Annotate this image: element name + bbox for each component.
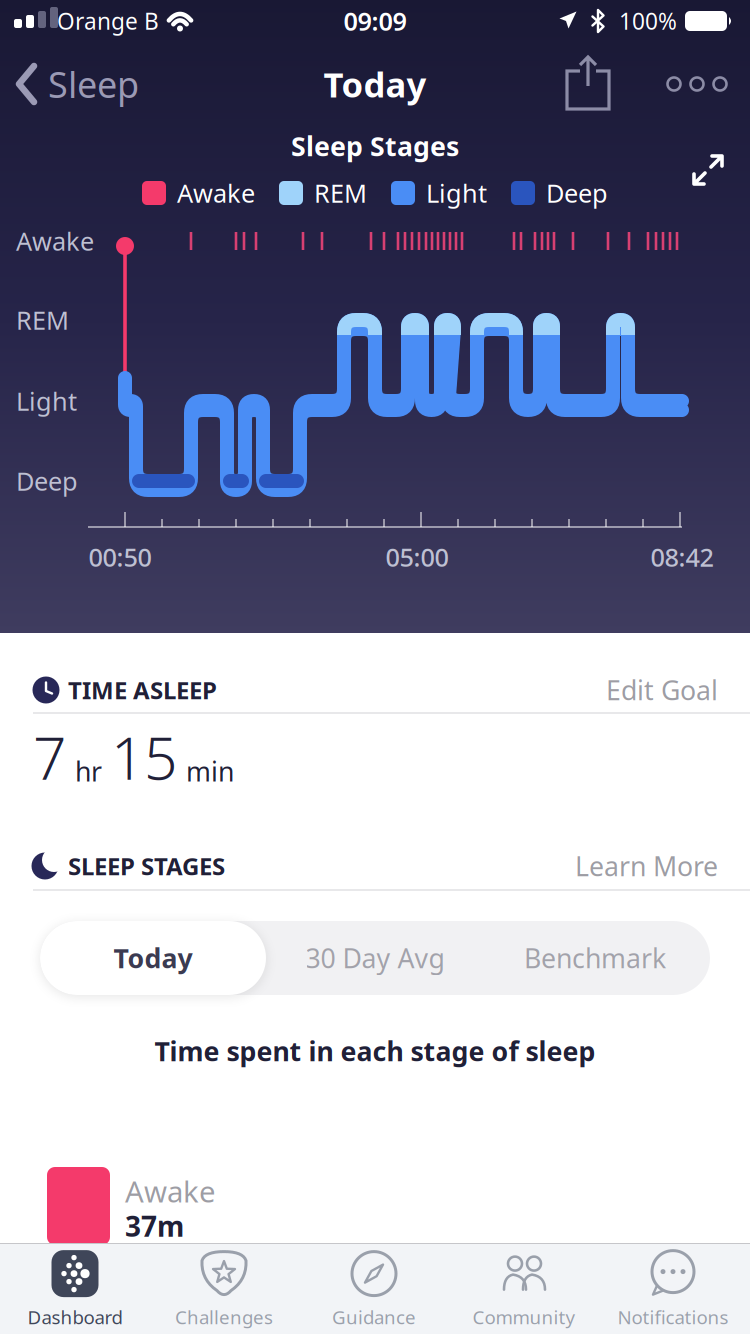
button[interactable]: Guidance xyxy=(332,1249,416,1329)
button[interactable] xyxy=(667,77,726,90)
button[interactable]: Learn More xyxy=(575,848,718,884)
staticText: 30 Day Avg xyxy=(305,940,444,976)
button[interactable] xyxy=(565,55,611,111)
staticText: Orange B xyxy=(57,6,159,36)
staticText: Edit Goal xyxy=(606,672,718,708)
staticText: min xyxy=(186,753,234,789)
staticText: Deep xyxy=(16,464,78,498)
staticText: Notifications xyxy=(617,1305,728,1329)
button[interactable]: Challenges xyxy=(175,1249,273,1329)
staticText: Awake xyxy=(125,1171,216,1210)
staticText: Sleep Stages xyxy=(291,128,459,164)
staticText: Today xyxy=(113,940,192,976)
staticText: hr xyxy=(75,753,102,789)
button[interactable]: Today xyxy=(40,921,266,995)
button[interactable]: Notifications xyxy=(617,1249,728,1329)
staticText: Benchmark xyxy=(524,940,666,976)
button[interactable]: Edit Goal xyxy=(606,672,718,708)
button[interactable] xyxy=(691,153,725,187)
staticText: 05:00 xyxy=(385,540,448,574)
staticText: Light xyxy=(16,384,77,418)
staticText: SLEEP STAGES xyxy=(68,850,225,882)
staticText: 15 xyxy=(111,718,177,796)
staticText: 08:42 xyxy=(650,540,713,574)
staticText: 100% xyxy=(619,6,677,36)
button[interactable]: Benchmark xyxy=(482,921,708,995)
staticText: Learn More xyxy=(575,848,718,884)
button[interactable]: Dashboard xyxy=(27,1249,122,1329)
staticText: Today xyxy=(323,61,426,107)
staticText: REM xyxy=(16,303,69,337)
staticText: Sleep xyxy=(48,60,139,108)
staticText: 00:50 xyxy=(88,540,151,574)
staticText: 09:09 xyxy=(343,4,406,38)
staticText: Awake xyxy=(177,176,255,210)
staticText: Dashboard xyxy=(27,1305,122,1329)
staticText: TIME ASLEEP xyxy=(68,674,217,706)
button[interactable]: Sleep xyxy=(18,60,139,108)
staticText: Guidance xyxy=(332,1305,416,1329)
staticText: Community xyxy=(472,1305,575,1329)
staticText: REM xyxy=(314,176,367,210)
button[interactable]: 30 Day Avg xyxy=(262,921,488,995)
staticText: Deep xyxy=(546,176,608,210)
staticText: Time spent in each stage of sleep xyxy=(154,1033,595,1069)
staticText: 37m xyxy=(125,1207,184,1245)
button[interactable]: Community xyxy=(472,1249,575,1329)
staticText: Challenges xyxy=(175,1305,273,1329)
staticText: Light xyxy=(426,176,487,210)
staticText: Awake xyxy=(16,224,94,258)
staticText: 7 xyxy=(33,718,66,796)
